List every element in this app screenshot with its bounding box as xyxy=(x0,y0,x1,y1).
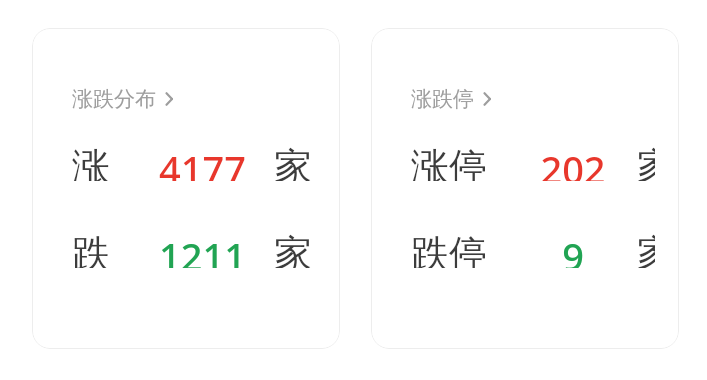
staticText: 涨停 xyxy=(411,143,487,181)
staticText: 涨 xyxy=(72,143,110,181)
button[interactable]: 涨跌分布 xyxy=(32,28,340,349)
other: More xyxy=(164,91,174,107)
button[interactable]: 涨跌停 xyxy=(371,28,679,349)
staticText: 跌 xyxy=(72,230,110,268)
staticText: 涨跌分布 xyxy=(72,86,156,112)
staticText: 9 xyxy=(562,230,584,268)
staticText: 202 xyxy=(540,143,606,181)
staticText: 家 xyxy=(274,230,312,268)
staticText: 家 xyxy=(274,143,312,181)
staticText: 涨跌停 xyxy=(411,86,474,112)
staticText: 4177 xyxy=(159,143,246,181)
staticText: 家 xyxy=(637,143,655,181)
staticText: 家 xyxy=(637,230,655,268)
staticText: 跌停 xyxy=(411,230,487,268)
other: More xyxy=(482,91,492,107)
staticText: 1211 xyxy=(159,230,246,268)
